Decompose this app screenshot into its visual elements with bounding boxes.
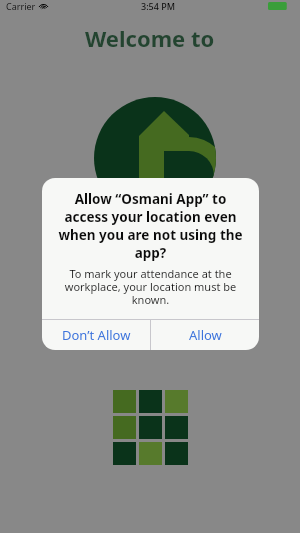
staticText: Welcome to <box>85 23 215 53</box>
staticText: Allow “Osmani App” to access your locati… <box>56 190 245 262</box>
staticText: To mark your attendance at the workplace… <box>56 266 245 307</box>
staticText: Allow <box>189 326 222 344</box>
button[interactable]: Don’t Allow <box>42 320 150 350</box>
staticText: 3:54 PM <box>141 0 175 12</box>
staticText: Carrier <box>6 0 36 12</box>
staticText: Don’t Allow <box>62 326 131 344</box>
button[interactable]: Allow <box>151 320 259 350</box>
